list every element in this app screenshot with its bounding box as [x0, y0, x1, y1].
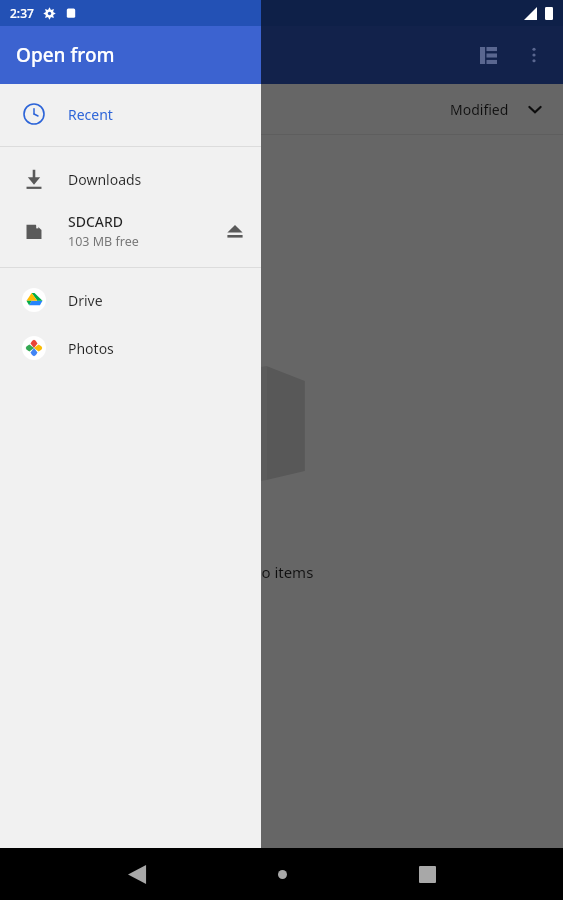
staticText: No items	[250, 562, 314, 582]
button[interactable]: SDCARD	[0, 203, 261, 259]
staticText: Photos	[68, 339, 114, 358]
staticText: 2:37	[10, 5, 34, 21]
button[interactable]: Drive	[0, 276, 261, 324]
staticText: Recent	[68, 105, 113, 124]
staticText: Drive	[68, 291, 103, 310]
button[interactable]: Home	[258, 850, 306, 898]
staticText: Downloads	[68, 170, 142, 189]
button[interactable]	[0, 0, 563, 848]
staticText: Open from	[16, 42, 115, 68]
button[interactable]: Downloads	[0, 155, 261, 203]
staticText: Modified	[450, 100, 509, 119]
staticText: SDCARD	[68, 212, 124, 231]
button[interactable]: Recents	[403, 850, 451, 898]
button[interactable]: Open from	[0, 26, 261, 84]
button[interactable]: Photos	[0, 324, 261, 372]
button[interactable]: Grid view	[465, 32, 511, 78]
button[interactable]: Recent	[0, 90, 261, 138]
button[interactable]: Modified	[0, 84, 563, 134]
staticText: 103 MB free	[68, 233, 139, 250]
button[interactable]: Eject	[209, 203, 261, 259]
button[interactable]: More options	[511, 32, 557, 78]
button[interactable]: Back	[113, 850, 161, 898]
